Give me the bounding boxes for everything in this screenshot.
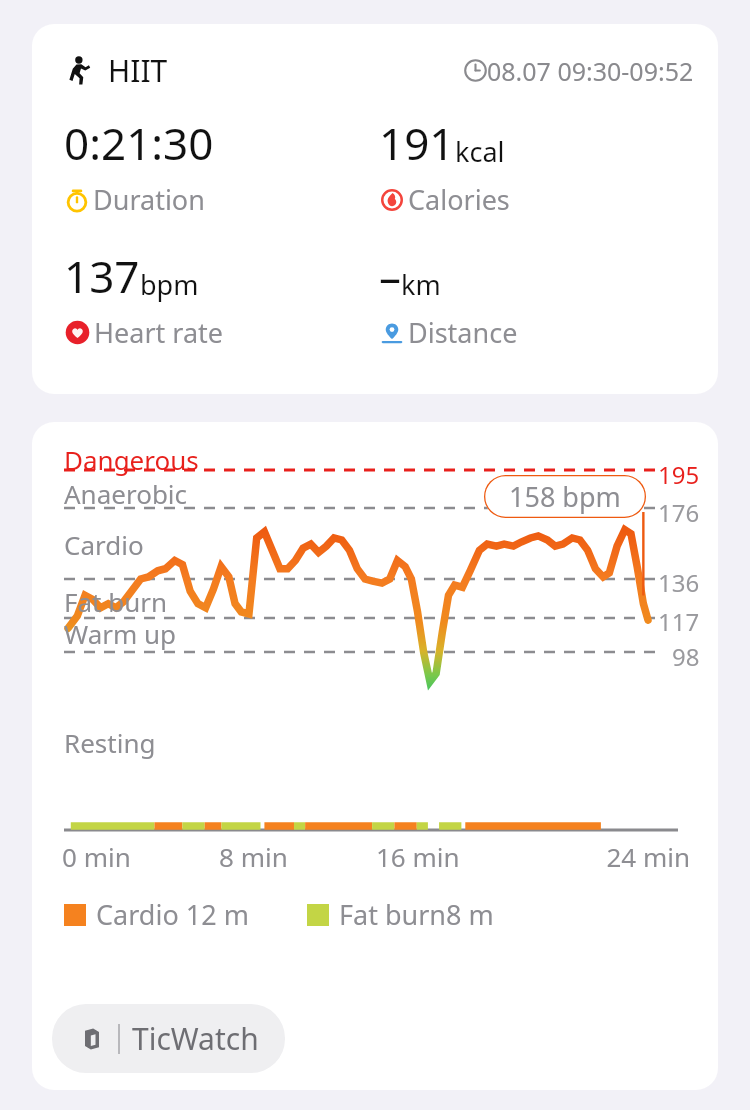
staticText: Anaerobic (64, 476, 188, 511)
staticText: HIIT (108, 50, 168, 91)
staticText: 117 (658, 605, 700, 638)
staticText: Dangerous (64, 442, 199, 477)
staticText: TicWatch (132, 1018, 259, 1059)
staticText: 0:21:30 (64, 113, 214, 173)
button[interactable]: HIIT (32, 24, 718, 394)
staticText: – (379, 246, 401, 306)
staticText: Warm up (64, 616, 177, 651)
staticText: Heart rate (94, 314, 224, 351)
staticText: 98 (672, 640, 700, 673)
button[interactable]: 158 bpm (484, 475, 646, 518)
staticText: bpm (140, 266, 199, 303)
staticText: Cardio 12 m (96, 896, 249, 933)
staticText: 191 (379, 113, 455, 173)
staticText: km (401, 266, 441, 303)
staticText: Cardio (64, 527, 144, 562)
button[interactable]: TicWatch (52, 1004, 285, 1073)
staticText: 176 (658, 496, 700, 529)
staticText: Resting (64, 725, 156, 760)
staticText: Distance (408, 314, 518, 351)
staticText: 8 min (219, 839, 376, 874)
staticText: 158 bpm (509, 478, 621, 515)
staticText: Fat burn8 m (339, 896, 494, 933)
staticText: Duration (93, 181, 205, 218)
other: TicWatch (78, 1025, 106, 1053)
staticText: 0 min (62, 839, 219, 874)
staticText: kcal (455, 133, 505, 170)
button[interactable]: Dangerous (32, 422, 718, 1090)
staticText: 137 (64, 246, 140, 306)
staticText: 195 (658, 458, 700, 491)
staticText: Fat burn (64, 584, 168, 619)
staticText: 16 min (376, 839, 533, 874)
staticText: 136 (658, 566, 700, 599)
staticText: 24 min (533, 839, 690, 874)
staticText: Calories (408, 181, 510, 218)
staticText: 08.07 09:30-09:52 (487, 54, 694, 88)
